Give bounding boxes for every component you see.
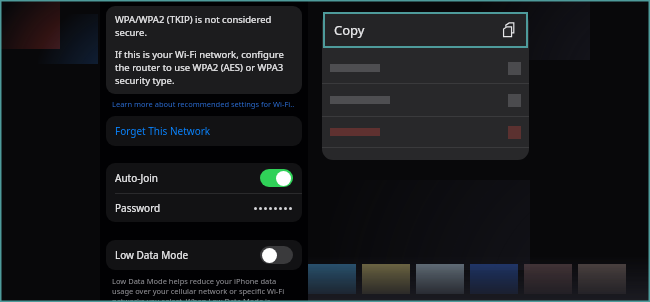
staticText: WPA/WPA2 (TKIP) is not considered secure… xyxy=(115,13,293,39)
button[interactable]: Off xyxy=(260,246,293,264)
staticText: Low Data Mode helps reduce your iPhone d… xyxy=(112,276,296,302)
staticText: Auto-Join xyxy=(115,171,158,185)
button[interactable]: On xyxy=(260,169,293,187)
staticText: Password xyxy=(115,201,161,215)
staticText: Learn more about recommended settings fo… xyxy=(112,99,295,109)
staticText: Forget This Network xyxy=(115,124,211,138)
button[interactable]: Low Data Mode xyxy=(106,240,302,270)
button[interactable]: Password xyxy=(106,194,302,222)
button[interactable]: Learn more about recommended settings fo… xyxy=(106,94,302,114)
staticText: Low Data Mode xyxy=(115,248,189,262)
button[interactable]: Forget This Network xyxy=(106,116,302,146)
staticText: Copy xyxy=(334,21,365,39)
staticText: If this is your Wi-Fi network, configure… xyxy=(115,48,293,87)
button[interactable]: Copy xyxy=(324,13,527,47)
button[interactable]: Auto-Join xyxy=(106,163,302,193)
